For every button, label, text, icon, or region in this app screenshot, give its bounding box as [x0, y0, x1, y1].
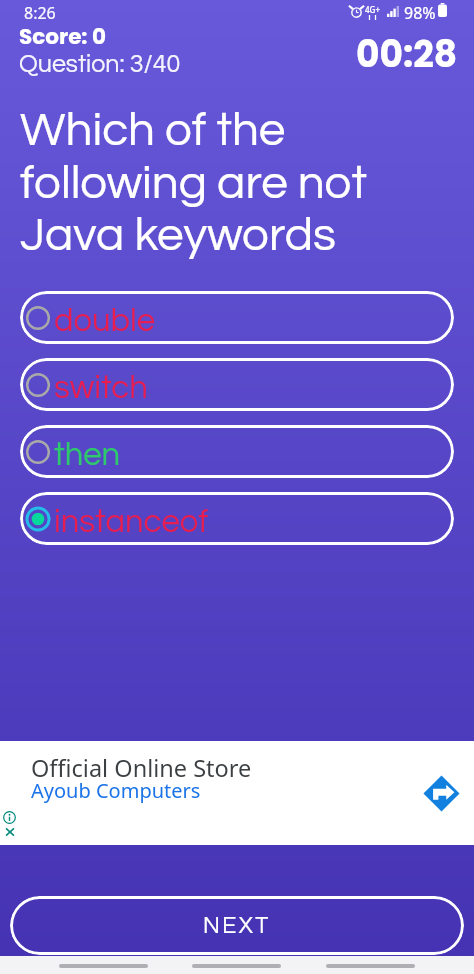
button[interactable]: Recents: [59, 964, 148, 968]
button[interactable]: Ad information: [3, 811, 16, 824]
staticText: 98%: [404, 2, 436, 24]
button[interactable]: then: [20, 425, 454, 478]
staticText: 8:26: [24, 2, 56, 24]
staticText: Which of the following are not Java keyw…: [20, 106, 410, 260]
button[interactable]: Ad: [421, 773, 462, 814]
staticText: Question: 3/40: [19, 51, 181, 77]
staticText: Official Online Store: [31, 752, 252, 784]
staticText: double: [54, 304, 156, 338]
button[interactable]: NEXT: [10, 896, 464, 955]
staticText: NEXT: [203, 914, 271, 938]
staticText: then: [54, 438, 121, 472]
staticText: switch: [54, 371, 148, 405]
button[interactable]: Home: [192, 964, 281, 968]
staticText: Score: 0: [19, 21, 107, 51]
staticText: instanceof: [54, 505, 209, 539]
staticText: 00:28: [356, 29, 458, 79]
button[interactable]: Back: [326, 964, 415, 968]
button[interactable]: double: [20, 291, 454, 344]
staticText: Ayoub Computers: [31, 777, 201, 804]
button[interactable]: Close ad: [4, 826, 16, 838]
button[interactable]: switch: [20, 358, 454, 411]
staticText: 4G+: [365, 4, 380, 15]
button[interactable]: instanceof: [20, 492, 454, 545]
